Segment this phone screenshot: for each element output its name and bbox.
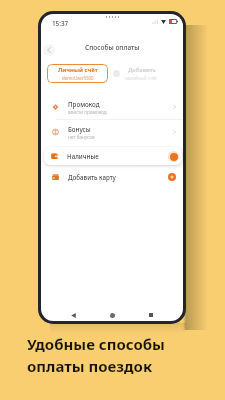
staticText: Личный счёт xyxy=(58,66,98,74)
button[interactable]: Home xyxy=(105,308,119,321)
staticText: Бонусы xyxy=(68,125,91,133)
button[interactable]: Добавить xyxy=(113,64,169,83)
button[interactable]: Добавить карту xyxy=(41,166,183,188)
staticText: ввести промокод xyxy=(68,109,107,115)
button[interactable]: Промокод xyxy=(41,96,183,118)
staticText: Добавить карту xyxy=(68,173,116,181)
staticText: 15:37 xyxy=(52,19,69,28)
staticText: Добавить xyxy=(128,66,156,74)
staticText: нет бонусов xyxy=(68,134,95,140)
button[interactable]: Личный счёт xyxy=(47,64,108,83)
button[interactable]: Бонусы xyxy=(41,121,183,143)
staticText: семейный счёт xyxy=(125,75,158,81)
button[interactable]: Recents xyxy=(144,308,158,321)
staticText: Промокод xyxy=(68,100,100,108)
button[interactable]: Back xyxy=(66,308,80,321)
button[interactable]: Наличные xyxy=(44,147,182,165)
staticText: demoUser5500 xyxy=(62,75,94,81)
staticText: Наличные xyxy=(67,152,99,160)
staticText: оплаты поездок xyxy=(27,356,153,376)
staticText: Удобные способы xyxy=(27,334,165,354)
staticText: Способы оплаты xyxy=(85,43,140,52)
button[interactable]: Назад xyxy=(43,44,55,56)
